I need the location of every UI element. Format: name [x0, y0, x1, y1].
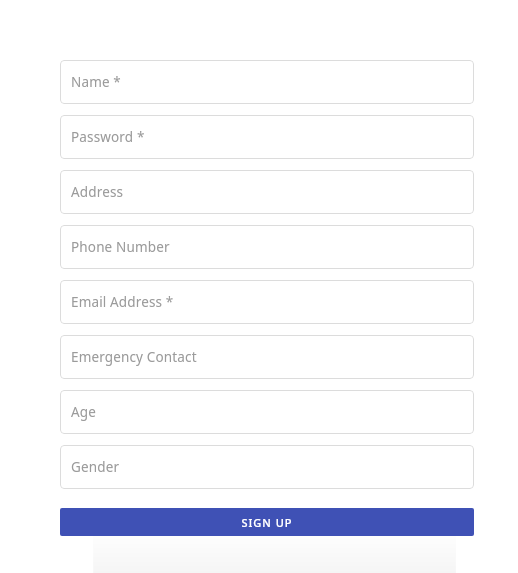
- staticText: Phone Number: [71, 238, 170, 256]
- staticText: Password *: [71, 128, 145, 146]
- button[interactable]: Sign up: [60, 508, 474, 536]
- staticText: Age: [71, 403, 96, 421]
- staticText: Email Address *: [71, 293, 174, 311]
- button[interactable]: Address: [60, 170, 474, 214]
- staticText: SIGN UP: [241, 515, 293, 530]
- staticText: Gender: [71, 458, 120, 476]
- staticText: Address: [71, 183, 124, 201]
- button[interactable]: Age: [60, 390, 474, 434]
- button[interactable]: Phone Number: [60, 225, 474, 269]
- button[interactable]: Email Address *: [60, 280, 474, 324]
- button[interactable]: Gender: [60, 445, 474, 489]
- button[interactable]: Emergency Contact: [60, 335, 474, 379]
- button[interactable]: Password *: [60, 115, 474, 159]
- staticText: Name *: [71, 73, 121, 91]
- staticText: Emergency Contact: [71, 348, 197, 366]
- button[interactable]: Name *: [60, 60, 474, 104]
